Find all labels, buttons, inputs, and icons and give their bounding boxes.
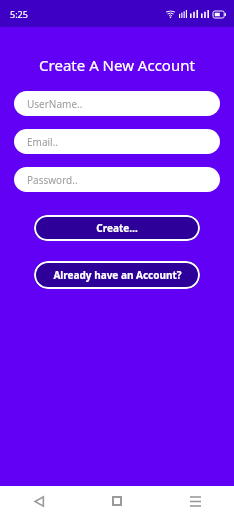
staticText: Create A New Account: [0, 55, 234, 75]
button[interactable]: Back: [26, 488, 52, 514]
staticText: Already have an Account?: [53, 268, 182, 282]
button[interactable]: Recent apps: [182, 488, 208, 514]
button[interactable]: Create…: [34, 215, 200, 241]
button[interactable]: Password..: [14, 167, 220, 192]
button[interactable]: Home: [104, 488, 130, 514]
button[interactable]: Already have an Account?: [34, 261, 200, 289]
button[interactable]: Email..: [14, 129, 220, 154]
staticText: Email..: [27, 135, 59, 149]
staticText: Create…: [96, 221, 138, 235]
staticText: Password..: [27, 173, 78, 187]
button[interactable]: UserName..: [14, 91, 220, 116]
staticText: 5:25: [10, 8, 28, 20]
staticText: UserName..: [27, 97, 83, 111]
